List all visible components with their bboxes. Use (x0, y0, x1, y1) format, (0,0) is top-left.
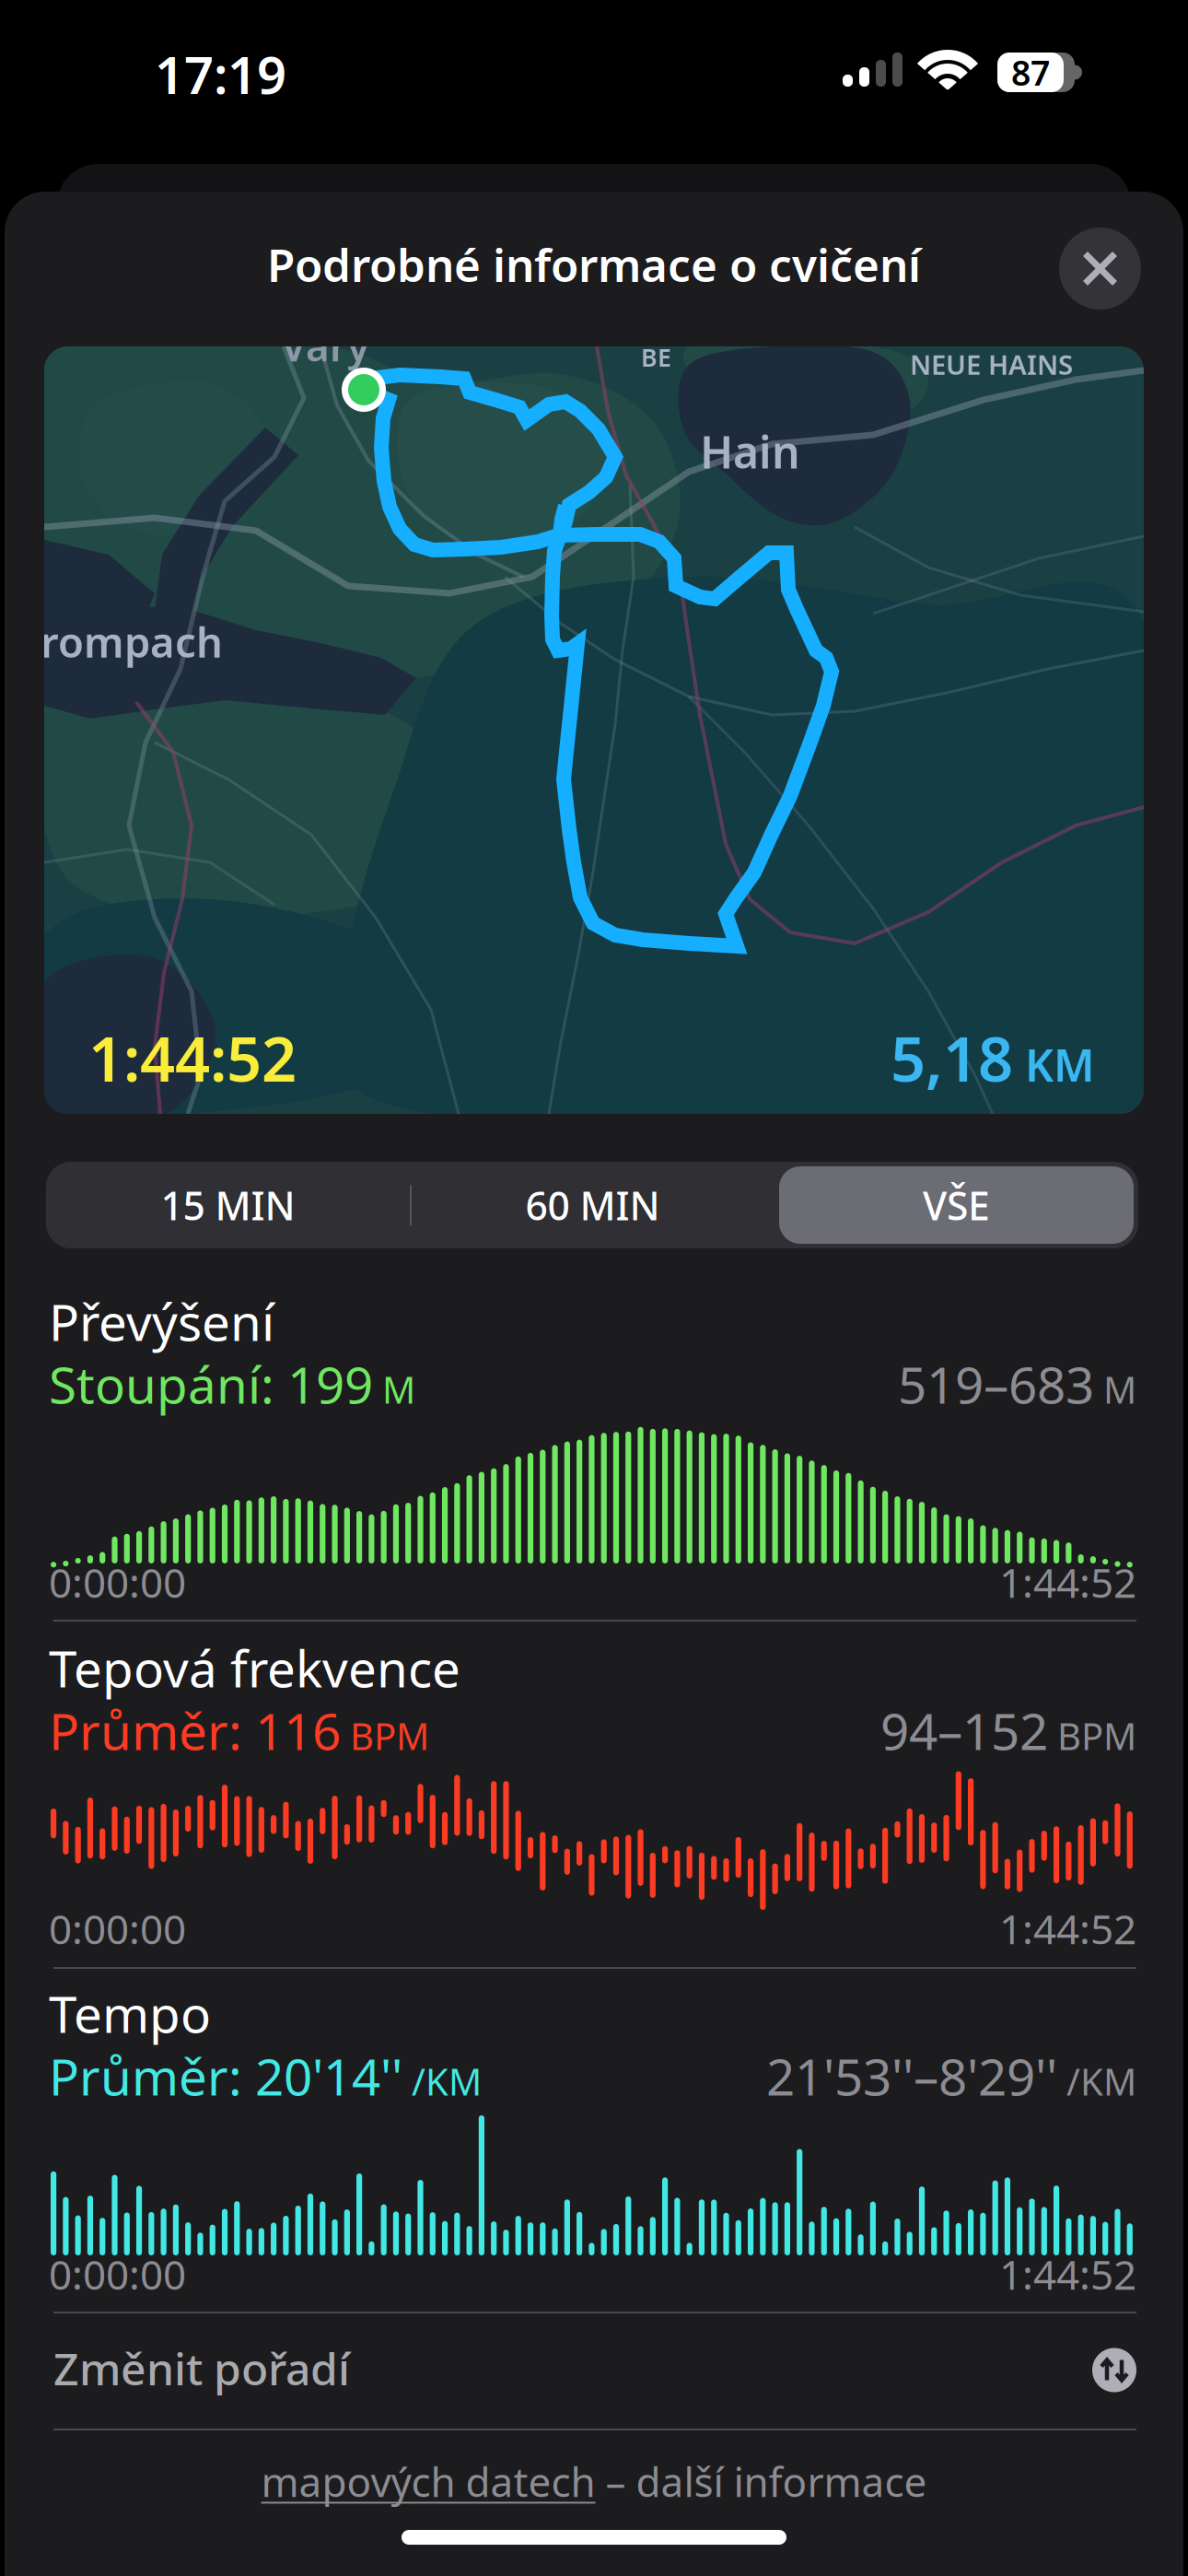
staticText: BPM (1048, 1711, 1136, 1760)
staticText: Vary (281, 319, 369, 373)
staticText: 94–152 (880, 1697, 1048, 1764)
staticText: 5,18 (891, 1017, 1013, 1098)
staticText: 15 MIN (161, 1179, 295, 1231)
staticText: mapových datech (261, 2454, 595, 2508)
staticText: Převýšení (49, 1288, 274, 1355)
staticText: Průměr: 20'14'' (49, 2043, 402, 2110)
staticText: rompach (41, 614, 223, 669)
staticText: Hain (700, 422, 800, 481)
staticText: /KM (1057, 2057, 1136, 2106)
staticText: Změnit pořadí (53, 2339, 350, 2398)
staticText: 1:44:52 (999, 1902, 1136, 1955)
staticText: 0:00:00 (49, 1902, 186, 1955)
staticText: 17:19 (155, 40, 286, 108)
staticText: NEUE HAINS (910, 346, 1073, 382)
button[interactable]: Změnit pořadí (53, 2312, 1136, 2429)
staticText: VŠE (923, 1179, 990, 1231)
staticText: BPM (341, 1711, 429, 1760)
staticText: – další informace (595, 2454, 927, 2508)
button[interactable]: mapových datech (5, 2454, 1183, 2508)
staticText: 1:44:52 (999, 2247, 1136, 2301)
staticText: BE (641, 341, 671, 374)
staticText: Tepová frekvence (49, 1635, 460, 1701)
staticText: Tempo (49, 1980, 211, 2047)
button[interactable]: Zavřít (1059, 228, 1141, 310)
staticText: 60 MIN (525, 1179, 660, 1231)
staticText: 519–683 (898, 1351, 1094, 1418)
staticText: 1:44:52 (999, 1555, 1136, 1609)
button[interactable]: VŠE (779, 1166, 1134, 1244)
staticText: /KM (402, 2057, 482, 2106)
staticText: 0:00:00 (49, 2247, 186, 2301)
staticText: 87 (1011, 49, 1050, 95)
staticText: Průměr: 116 (49, 1697, 341, 1764)
staticText: 1:44:52 (88, 1017, 297, 1098)
button[interactable]: 60 MIN (411, 1162, 775, 1248)
staticText: 0:00:00 (49, 1555, 186, 1609)
button[interactable]: 15 MIN (46, 1162, 410, 1248)
staticText: Podrobné informace o cvičení (267, 234, 921, 294)
staticText: M (1094, 1365, 1136, 1414)
staticText: Stoupání: 199 (49, 1351, 373, 1418)
staticText: 21'53''–8'29'' (766, 2043, 1057, 2110)
staticText: KM (1025, 1035, 1095, 1094)
staticText: M (373, 1365, 415, 1414)
